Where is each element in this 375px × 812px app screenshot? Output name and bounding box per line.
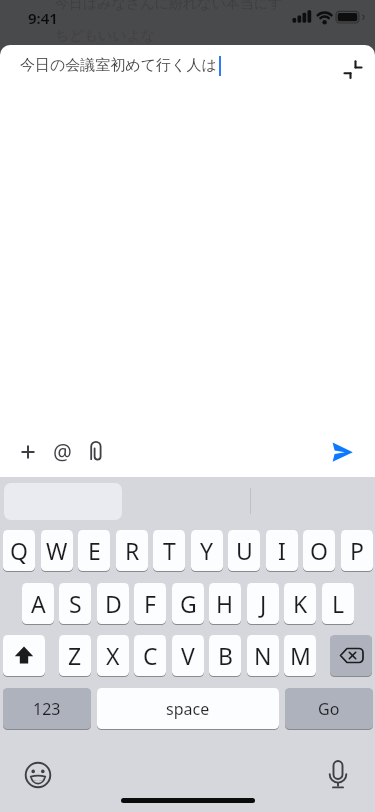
button[interactable]	[325, 434, 361, 470]
button[interactable]: Z	[59, 635, 91, 676]
staticText: F	[144, 588, 156, 619]
staticText: V	[181, 640, 195, 671]
staticText: S	[69, 588, 82, 619]
staticText: M	[290, 640, 311, 671]
button[interactable]: D	[97, 583, 129, 624]
staticText: G	[180, 588, 197, 619]
button[interactable]: U	[228, 530, 260, 571]
staticText: L	[332, 588, 345, 619]
button[interactable]: P	[341, 530, 373, 571]
button[interactable]: K	[284, 583, 316, 624]
staticText: Y	[200, 535, 214, 566]
staticText: J	[260, 588, 267, 619]
staticText: B	[218, 640, 233, 671]
staticText: 今日はみなさんに紛れない本当にす	[55, 0, 283, 13]
button[interactable]	[318, 755, 358, 795]
staticText: R	[125, 535, 140, 566]
button[interactable]: F	[134, 583, 166, 624]
button[interactable]: S	[59, 583, 91, 624]
button[interactable]: C	[134, 635, 166, 676]
staticText: D	[105, 588, 122, 619]
staticText: N	[254, 640, 272, 671]
staticText: I	[278, 535, 286, 566]
staticText: Go	[318, 698, 340, 720]
button[interactable]: @	[46, 436, 78, 468]
button[interactable]: E	[78, 530, 110, 571]
staticText: @	[53, 438, 72, 467]
staticText: Q	[10, 535, 28, 566]
staticText: Z	[68, 640, 82, 671]
staticText: 123	[33, 698, 61, 720]
button[interactable]: R	[116, 530, 148, 571]
button[interactable]: 123	[3, 688, 91, 729]
button[interactable]: N	[247, 635, 279, 676]
button[interactable]: W	[41, 530, 73, 571]
button[interactable]: T	[153, 530, 185, 571]
staticText: 今日の会議室初めて行く人は	[20, 56, 217, 75]
staticText: U	[236, 535, 253, 566]
staticText: C	[143, 640, 158, 671]
staticText: space	[166, 698, 210, 720]
staticText: 9:41	[28, 8, 58, 28]
button[interactable]: H	[209, 583, 241, 624]
staticText: H	[216, 588, 234, 619]
button[interactable]	[18, 755, 58, 795]
button[interactable]	[12, 436, 44, 468]
button[interactable]: A	[22, 583, 54, 624]
button[interactable]	[3, 635, 45, 676]
button[interactable]: Y	[191, 530, 223, 571]
staticText: W	[46, 535, 68, 566]
button[interactable]: Q	[3, 530, 35, 571]
staticText: K	[293, 588, 308, 619]
staticText: O	[310, 535, 328, 566]
staticText: X	[106, 640, 120, 671]
button[interactable]: Go	[285, 688, 373, 729]
button[interactable]: I	[266, 530, 298, 571]
staticText: E	[88, 535, 101, 566]
button[interactable]: O	[303, 530, 335, 571]
button[interactable]	[330, 635, 372, 676]
button[interactable]: X	[97, 635, 129, 676]
staticText: P	[350, 535, 364, 566]
button[interactable]: B	[209, 635, 241, 676]
button[interactable]: J	[247, 583, 279, 624]
button[interactable]: M	[284, 635, 316, 676]
staticText: A	[31, 588, 46, 619]
button[interactable]: G	[172, 583, 204, 624]
button[interactable]	[80, 436, 112, 468]
button[interactable]: V	[172, 635, 204, 676]
staticText: T	[163, 535, 176, 566]
button[interactable]: space	[97, 688, 279, 729]
button[interactable]	[334, 52, 368, 86]
button[interactable]: L	[322, 583, 354, 624]
